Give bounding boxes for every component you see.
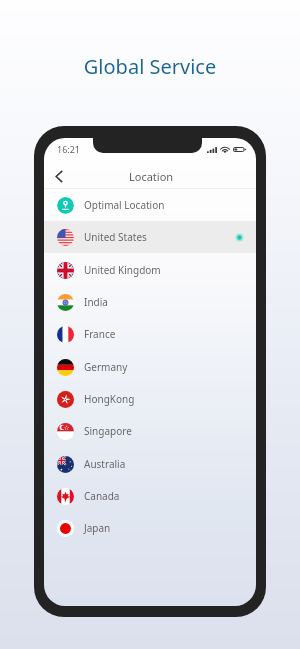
staticText: Global Service xyxy=(0,53,300,80)
button[interactable]: Germany xyxy=(44,351,256,383)
button[interactable]: Australia xyxy=(44,448,256,480)
staticText: United States xyxy=(84,230,147,244)
staticText: HongKong xyxy=(84,392,135,406)
staticText: Australia xyxy=(84,457,126,471)
button[interactable]: Singapore xyxy=(44,415,256,447)
button[interactable]: United States xyxy=(44,221,256,253)
staticText: 16:21 xyxy=(57,143,81,155)
button[interactable]: Back xyxy=(46,163,72,189)
button[interactable]: Japan xyxy=(44,512,256,544)
staticText: India xyxy=(84,295,108,309)
staticText: Location xyxy=(129,169,174,184)
staticText: Japan xyxy=(84,521,111,535)
staticText: France xyxy=(84,327,116,341)
staticText: Optimal Location xyxy=(84,198,165,212)
button[interactable]: United Kingdom xyxy=(44,254,256,286)
staticText: Singapore xyxy=(84,424,132,438)
staticText: Germany xyxy=(84,360,128,374)
staticText: Canada xyxy=(84,489,120,503)
staticText: United Kingdom xyxy=(84,263,161,277)
button[interactable]: India xyxy=(44,286,256,318)
button[interactable]: Canada xyxy=(44,480,256,512)
button[interactable]: HongKong xyxy=(44,383,256,415)
button[interactable]: France xyxy=(44,318,256,350)
button[interactable]: Optimal Location xyxy=(44,189,256,221)
